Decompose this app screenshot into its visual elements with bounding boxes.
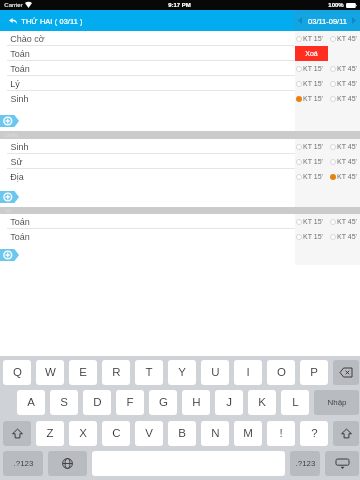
button[interactable]: Change language (48, 451, 87, 476)
button[interactable]: I (234, 360, 262, 385)
button[interactable]: .?123 (290, 451, 320, 476)
button[interactable]: KT 15' (296, 233, 323, 241)
button[interactable]: KT 15' (296, 218, 323, 226)
staticText: Sinh (10, 142, 29, 152)
staticText: L (292, 396, 299, 409)
staticText: KT 45' (337, 143, 357, 151)
button[interactable]: KT 15' (296, 143, 323, 151)
button[interactable]: J (215, 390, 243, 415)
button[interactable]: Shift (3, 421, 31, 446)
button[interactable]: T (135, 360, 163, 385)
button[interactable]: U (201, 360, 229, 385)
button[interactable]: L (281, 390, 309, 415)
button[interactable]: KT 45' (330, 143, 357, 151)
button[interactable]: R (102, 360, 130, 385)
button[interactable]: Sinh (0, 91, 360, 106)
staticText: KT 15' (303, 95, 323, 103)
staticText: B (178, 427, 186, 440)
button[interactable]: Q (3, 360, 31, 385)
staticText: 03/11-09/11 (308, 17, 347, 25)
button[interactable]: KT 45' (330, 218, 357, 226)
button[interactable]: S (50, 390, 78, 415)
button[interactable]: Y (168, 360, 196, 385)
button[interactable]: Toán (0, 61, 360, 76)
staticText: KT 15' (303, 65, 323, 73)
button[interactable]: KT 15' (296, 95, 323, 103)
staticText: P (310, 366, 318, 379)
button[interactable]: KT 45' (330, 35, 357, 43)
button[interactable]: O (267, 360, 295, 385)
button[interactable]: KT 45' (330, 173, 357, 181)
staticText: I (246, 366, 250, 379)
button[interactable]: Previous week (294, 10, 306, 31)
staticText: K (258, 396, 266, 409)
button[interactable]: N (201, 421, 229, 446)
staticText: ! (279, 427, 283, 440)
button[interactable]: K (248, 390, 276, 415)
button[interactable]: ? (300, 421, 328, 446)
button[interactable]: B (168, 421, 196, 446)
button[interactable]: ! (267, 421, 295, 446)
button[interactable]: M (234, 421, 262, 446)
button[interactable]: D (83, 390, 111, 415)
staticText: Chào cờ (10, 34, 45, 44)
button[interactable]: Back (6, 15, 83, 27)
button[interactable]: Nhập (314, 390, 359, 415)
button[interactable]: KT 15' (296, 158, 323, 166)
button[interactable]: G (149, 390, 177, 415)
staticText: KT 15' (303, 173, 323, 181)
button[interactable]: .?123 (3, 451, 43, 476)
button[interactable]: KT 15' (296, 80, 323, 88)
button[interactable]: Địa (0, 169, 360, 184)
staticText: Sinh (10, 94, 29, 104)
button[interactable]: X (69, 421, 97, 446)
button[interactable]: Hide keyboard (325, 451, 359, 476)
button[interactable]: Shift (333, 421, 359, 446)
staticText: R (112, 366, 121, 379)
button[interactable]: Toán (0, 214, 360, 229)
staticText: 9:17 PM (168, 2, 191, 9)
button[interactable]: Add period (0, 191, 19, 203)
button[interactable]: 03/11-09/11 (306, 10, 348, 31)
button[interactable]: Next week (348, 10, 360, 31)
button[interactable]: KT 45' (330, 65, 357, 73)
button[interactable]: E (69, 360, 97, 385)
button[interactable]: Toán (0, 229, 360, 244)
button[interactable]: KT 15' (296, 35, 323, 43)
button[interactable]: P (300, 360, 328, 385)
button[interactable]: H (182, 390, 210, 415)
staticText: S (60, 396, 68, 409)
button[interactable]: Sử (0, 154, 360, 169)
button[interactable]: W (36, 360, 64, 385)
button[interactable]: KT 45' (330, 80, 357, 88)
staticText: A (27, 396, 35, 409)
button[interactable]: Z (36, 421, 64, 446)
button[interactable]: Toán (0, 46, 360, 61)
button[interactable]: C (102, 421, 130, 446)
button[interactable]: F (116, 390, 144, 415)
button[interactable]: Add period (0, 249, 19, 261)
button[interactable]: KT 15' (296, 173, 323, 181)
staticText: Z (46, 427, 54, 440)
button[interactable]: Lý (0, 76, 360, 91)
staticText: tối (5, 208, 11, 214)
button[interactable]: Add period (0, 115, 19, 127)
button[interactable]: Xoá (295, 46, 328, 61)
button[interactable]: KT 45' (330, 95, 357, 103)
staticText: Toán (10, 217, 30, 227)
button[interactable]: KT 45' (330, 233, 357, 241)
staticText: Toán (10, 64, 30, 74)
button[interactable]: KT 45' (330, 158, 357, 166)
staticText: D (93, 396, 102, 409)
staticText: KT 45' (337, 95, 357, 103)
staticText: Sử (10, 157, 23, 167)
staticText: KT 15' (303, 80, 323, 88)
button[interactable]: V (135, 421, 163, 446)
button[interactable]: Backspace (333, 360, 359, 385)
button[interactable]: KT 15' (296, 65, 323, 73)
button[interactable]: Sinh (0, 139, 360, 154)
staticText: F (126, 396, 134, 409)
button[interactable]: Chào cờ (0, 31, 360, 46)
button[interactable]: A (17, 390, 45, 415)
